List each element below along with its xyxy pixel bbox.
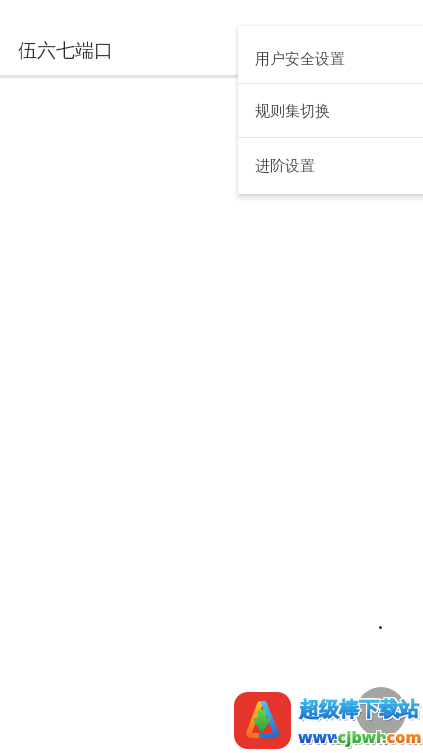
staticText: 超级棒下载站 xyxy=(299,696,419,721)
staticText: 超级棒下载站 xyxy=(298,698,418,723)
staticText: www xyxy=(297,726,341,748)
staticText: 超级棒下载站 xyxy=(298,696,418,721)
staticText: www xyxy=(297,727,341,749)
staticText: 用户安全设置 xyxy=(255,50,345,69)
staticText: .com xyxy=(383,725,423,747)
button[interactable]: 进阶设置 xyxy=(238,138,423,194)
staticText: www xyxy=(298,726,342,748)
button[interactable]: 用户安全设置 xyxy=(238,26,423,83)
staticText: 进阶设置 xyxy=(255,157,315,176)
staticText: 超级棒下载站 xyxy=(300,697,420,722)
staticText: .cjbwh xyxy=(332,726,386,748)
staticText: www xyxy=(297,725,341,747)
staticText: .com xyxy=(382,726,422,748)
staticText: 伍六七端口 xyxy=(18,39,113,63)
staticText: www xyxy=(299,727,343,749)
staticText: .com xyxy=(381,727,421,749)
staticText: .cjbwh xyxy=(333,726,387,748)
staticText: www xyxy=(298,727,342,749)
staticText: .cjbwh xyxy=(334,726,388,748)
staticText: .cjbwh xyxy=(333,725,387,747)
staticText: www xyxy=(299,726,343,748)
staticText: 超级棒下载站 xyxy=(299,698,419,723)
staticText: .cjbwh xyxy=(335,728,389,750)
staticText: 超级棒下载站 xyxy=(298,697,418,722)
staticText: .com xyxy=(381,726,421,748)
staticText: .com xyxy=(382,725,422,747)
staticText: 超级棒下载站 xyxy=(300,698,420,723)
staticText: www xyxy=(298,725,342,747)
staticText: .com xyxy=(383,726,423,748)
staticText: .cjbwh xyxy=(333,727,387,749)
staticText: 超级棒下载站 xyxy=(301,699,421,724)
staticText: .com xyxy=(384,728,423,750)
staticText: 超级棒下载站 xyxy=(299,697,419,722)
staticText: .cjbwh xyxy=(332,725,386,747)
button[interactable]: 规则集切换 xyxy=(238,84,423,137)
staticText: .cjbwh xyxy=(334,727,388,749)
staticText: .com xyxy=(383,727,423,749)
staticText: .com xyxy=(381,725,421,747)
staticText: 规则集切换 xyxy=(255,102,330,121)
staticText: .com xyxy=(382,727,422,749)
staticText: .cjbwh xyxy=(334,725,388,747)
staticText: www xyxy=(299,725,343,747)
button[interactable]: Add port xyxy=(356,687,406,737)
staticText: 超级棒下载站 xyxy=(300,696,420,721)
staticText: .cjbwh xyxy=(332,727,386,749)
staticText: www xyxy=(300,728,344,750)
